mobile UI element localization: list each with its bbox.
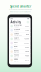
staticText: Mar 27 — [14, 60, 19, 62]
button[interactable]: Groceries — [9, 24, 31, 28]
staticText: -62.10 — [25, 59, 29, 61]
staticText: -29.00 — [25, 46, 29, 48]
staticText: Mar 28 — [14, 56, 19, 58]
staticText: -950.00 — [24, 42, 29, 44]
button[interactable]: Salary — [9, 37, 31, 41]
button[interactable]: Gym — [9, 45, 31, 49]
staticText: -6.40 — [26, 34, 29, 35]
staticText: Monday — [14, 39, 20, 41]
staticText: Apr 1 — [14, 47, 18, 49]
staticText: where your cash really goes — [10, 11, 31, 13]
button[interactable]: Dining — [9, 58, 31, 62]
staticText: Rent — [14, 41, 18, 43]
staticText: Books — [14, 50, 19, 52]
button[interactable]: Transit — [9, 28, 31, 32]
staticText: Groceries — [14, 24, 22, 26]
button[interactable]: Books — [9, 50, 31, 54]
staticText: Phone — [14, 54, 19, 56]
staticText: Today — [14, 30, 19, 32]
staticText: -12.00 — [25, 29, 29, 31]
staticText: Coffee — [14, 33, 19, 35]
staticText: 9:41 — [10, 18, 13, 20]
staticText: +2,400 — [24, 38, 29, 40]
staticText: Activity — [10, 20, 21, 24]
staticText: Apr 1 — [14, 43, 18, 45]
staticText: Spend smarter — [10, 5, 31, 8]
staticText: Transit — [14, 28, 20, 30]
staticText: -38.20 — [25, 25, 29, 27]
staticText: Mar 30 — [14, 52, 19, 53]
button[interactable]: Phone — [9, 54, 31, 58]
staticText: -45.00 — [25, 55, 29, 57]
staticText: -18.75 — [25, 51, 29, 52]
staticText: Dining — [14, 58, 18, 60]
staticText: Salary — [14, 37, 19, 39]
button[interactable]: Rent — [9, 41, 31, 45]
staticText: Gym — [14, 45, 17, 47]
button[interactable]: Coffee — [9, 33, 31, 37]
staticText: Track every expense and see — [9, 9, 32, 10]
staticText: Yesterday — [14, 35, 22, 36]
